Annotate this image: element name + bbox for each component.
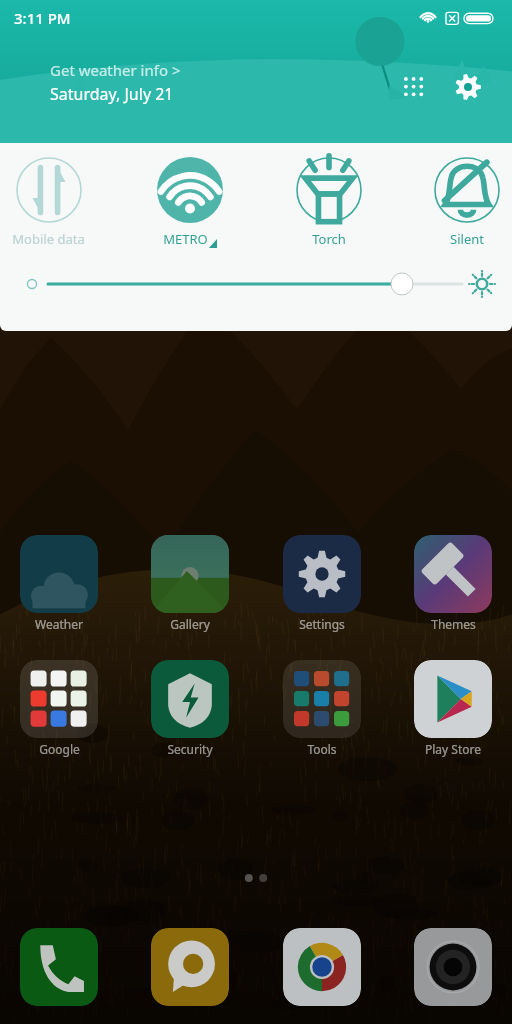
staticText: Tools <box>307 741 337 757</box>
staticText: Get weather info > <box>50 60 181 80</box>
button[interactable]: Security <box>151 660 229 757</box>
staticText: METRO <box>163 230 208 248</box>
button[interactable]: Brightness <box>16 262 496 306</box>
staticText: Google <box>39 741 80 757</box>
button[interactable]: Themes <box>414 535 492 632</box>
staticText: Settings <box>299 616 345 632</box>
button[interactable]: Get weather info > <box>50 60 181 80</box>
button[interactable]: Phone <box>20 928 98 1006</box>
staticText: Weather <box>35 616 83 632</box>
staticText: Torch <box>312 230 346 248</box>
button[interactable]: Settings <box>283 535 361 632</box>
button[interactable]: Camera <box>414 928 492 1006</box>
button[interactable]: METRO <box>157 157 223 248</box>
button[interactable]: Torch <box>296 157 362 248</box>
button[interactable]: Gallery <box>151 535 229 632</box>
button[interactable]: Play Store <box>414 660 492 757</box>
staticText: Saturday, July 21 <box>50 83 174 105</box>
staticText: Themes <box>431 616 476 632</box>
staticText: Gallery <box>170 616 210 632</box>
staticText: Play Store <box>425 741 481 757</box>
button[interactable]: Edit quick settings <box>394 67 434 107</box>
staticText: Silent <box>450 230 484 248</box>
button[interactable]: Messaging <box>151 928 229 1006</box>
staticText: Mobile data <box>12 230 85 248</box>
staticText: 3:11 PM <box>14 8 71 28</box>
staticText: Security <box>167 741 213 757</box>
button[interactable]: Google <box>20 660 98 757</box>
button[interactable]: Chrome <box>283 928 361 1006</box>
button[interactable]: Tools <box>283 660 361 757</box>
button[interactable]: Settings <box>448 67 488 107</box>
button[interactable]: Weather <box>20 535 98 632</box>
button[interactable]: Mobile data <box>12 157 85 248</box>
button[interactable]: Silent <box>434 157 500 248</box>
